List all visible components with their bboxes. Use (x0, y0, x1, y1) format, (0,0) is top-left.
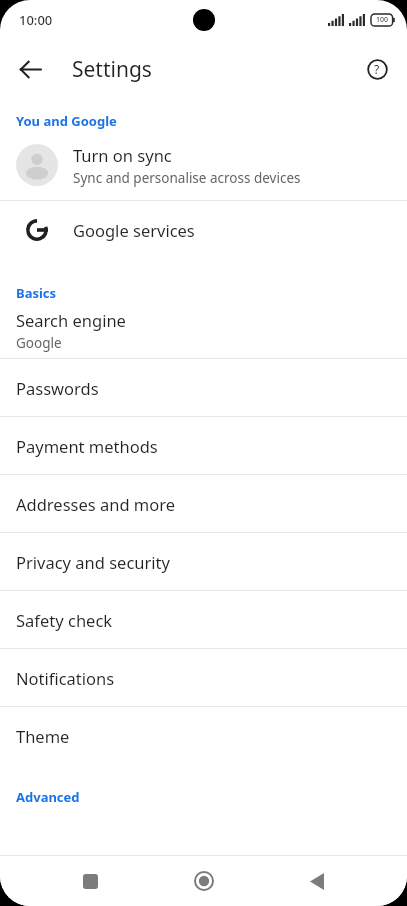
button[interactable]: Theme (0, 707, 407, 764)
button[interactable]: Safety check (0, 591, 407, 648)
button[interactable]: Payment methods (0, 417, 407, 474)
staticText: You and Google (16, 112, 117, 130)
staticText: Google (16, 334, 62, 352)
staticText: 100 (376, 15, 389, 25)
staticText: Basics (16, 284, 57, 302)
staticText: Safety check (16, 609, 113, 631)
staticText: Passwords (16, 377, 99, 399)
staticText: Payment methods (16, 435, 158, 457)
staticText: Theme (16, 725, 70, 747)
button[interactable]: Search engine (0, 302, 407, 358)
button[interactable]: Passwords (0, 359, 407, 416)
staticText: Turn on sync (73, 144, 172, 166)
button[interactable]: Addresses and more (0, 475, 407, 532)
button[interactable]: Help (355, 47, 399, 91)
button[interactable]: Recent apps (66, 857, 114, 905)
staticText: Search engine (16, 309, 126, 331)
staticText: Google services (73, 219, 195, 241)
button[interactable]: Notifications (0, 649, 407, 706)
staticText: Sync and personalise across devices (73, 169, 301, 187)
button[interactable]: Home (180, 857, 228, 905)
staticText: Settings (72, 55, 152, 84)
staticText: Notifications (16, 667, 115, 689)
button[interactable]: Back (293, 857, 341, 905)
staticText: Addresses and more (16, 493, 176, 515)
staticText: Privacy and security (16, 551, 170, 573)
staticText: Advanced (16, 788, 80, 806)
button[interactable]: Privacy and security (0, 533, 407, 590)
staticText: 10:00 (19, 11, 53, 29)
staticText: ? (374, 61, 380, 77)
button[interactable]: Back (8, 47, 52, 91)
button[interactable]: Google services (0, 201, 407, 258)
button[interactable]: Turn on sync (0, 130, 407, 200)
